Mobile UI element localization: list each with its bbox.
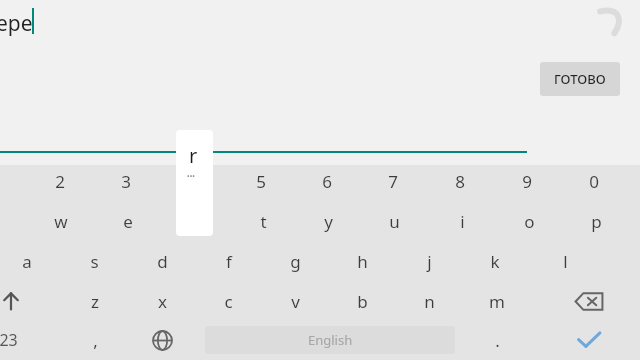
staticText: m <box>489 290 505 313</box>
staticText: 9 <box>522 170 532 193</box>
button[interactable]: c <box>196 282 260 320</box>
button[interactable]: w <box>29 202 93 240</box>
staticText: 2 <box>55 170 65 193</box>
staticText: ГОТОВО <box>554 70 606 88</box>
button[interactable]: Backspace <box>557 282 621 320</box>
staticText: w <box>54 210 68 233</box>
staticText: 0 <box>589 170 599 193</box>
staticText: 8 <box>455 170 465 193</box>
button[interactable]: d <box>130 242 194 280</box>
button[interactable]: j <box>397 242 461 280</box>
staticText: t <box>260 210 267 233</box>
staticText: . <box>495 329 500 352</box>
button[interactable]: p <box>564 202 628 240</box>
staticText: English <box>308 331 353 349</box>
button[interactable]: 3 <box>94 162 158 200</box>
button[interactable]: e <box>96 202 160 240</box>
button[interactable]: o <box>497 202 561 240</box>
staticText: k <box>490 250 500 273</box>
button[interactable]: 8 <box>428 162 492 200</box>
button[interactable]: ГОТОВО <box>540 62 620 96</box>
staticText: p <box>591 210 602 233</box>
button[interactable]: Enter <box>557 321 621 359</box>
button[interactable]: Shift <box>0 282 41 320</box>
button[interactable]: 7 <box>361 162 425 200</box>
staticText: ?123 <box>0 329 18 351</box>
button[interactable]: . <box>465 321 529 359</box>
staticText: x <box>158 290 167 313</box>
staticText: epe <box>0 9 33 38</box>
staticText: , <box>93 329 98 352</box>
staticText: g <box>290 250 301 273</box>
button[interactable]: n <box>397 282 461 320</box>
other: Loading <box>594 4 628 38</box>
staticText: 5 <box>256 170 266 193</box>
staticText: o <box>524 210 535 233</box>
staticText: 3 <box>121 170 131 193</box>
staticText: b <box>357 290 368 313</box>
button[interactable]: k <box>463 242 527 280</box>
staticText: c <box>224 290 233 313</box>
button[interactable]: b <box>330 282 394 320</box>
staticText: v <box>291 290 300 313</box>
button[interactable]: s <box>62 242 126 280</box>
button[interactable]: epe <box>0 6 86 40</box>
button[interactable]: g <box>263 242 327 280</box>
button[interactable]: ?123 <box>0 321 35 359</box>
button[interactable]: v <box>263 282 327 320</box>
button[interactable]: , <box>63 321 127 359</box>
staticText: z <box>91 290 99 313</box>
staticText: ••• <box>187 172 195 182</box>
button[interactable]: Change language <box>130 321 194 359</box>
button[interactable]: z <box>63 282 127 320</box>
staticText: f <box>226 250 232 273</box>
button[interactable]: h <box>330 242 394 280</box>
button[interactable]: 6 <box>295 162 359 200</box>
button[interactable]: l <box>533 242 597 280</box>
button[interactable]: u <box>362 202 426 240</box>
button[interactable]: x <box>130 282 194 320</box>
staticText: a <box>22 250 32 273</box>
staticText: 7 <box>388 170 398 193</box>
staticText: 6 <box>322 170 332 193</box>
button[interactable]: 9 <box>495 162 559 200</box>
staticText: l <box>563 250 568 273</box>
button[interactable]: 1 <box>0 162 28 200</box>
staticText: s <box>90 250 99 273</box>
staticText: h <box>357 250 368 273</box>
button[interactable]: 0 <box>562 162 626 200</box>
staticText: n <box>424 290 435 313</box>
button[interactable]: English <box>205 326 455 354</box>
staticText: e <box>123 210 133 233</box>
staticText: y <box>324 210 333 233</box>
button[interactable]: t <box>231 202 295 240</box>
staticText: i <box>460 210 465 233</box>
button[interactable]: i <box>430 202 494 240</box>
staticText: u <box>389 210 400 233</box>
staticText: r <box>189 142 198 169</box>
button[interactable]: 5 <box>229 162 293 200</box>
staticText: d <box>157 250 168 273</box>
button[interactable]: 2 <box>28 162 92 200</box>
button[interactable]: f <box>197 242 261 280</box>
button[interactable]: y <box>296 202 360 240</box>
staticText: j <box>427 250 432 273</box>
button[interactable]: m <box>465 282 529 320</box>
button[interactable]: a <box>0 242 59 280</box>
